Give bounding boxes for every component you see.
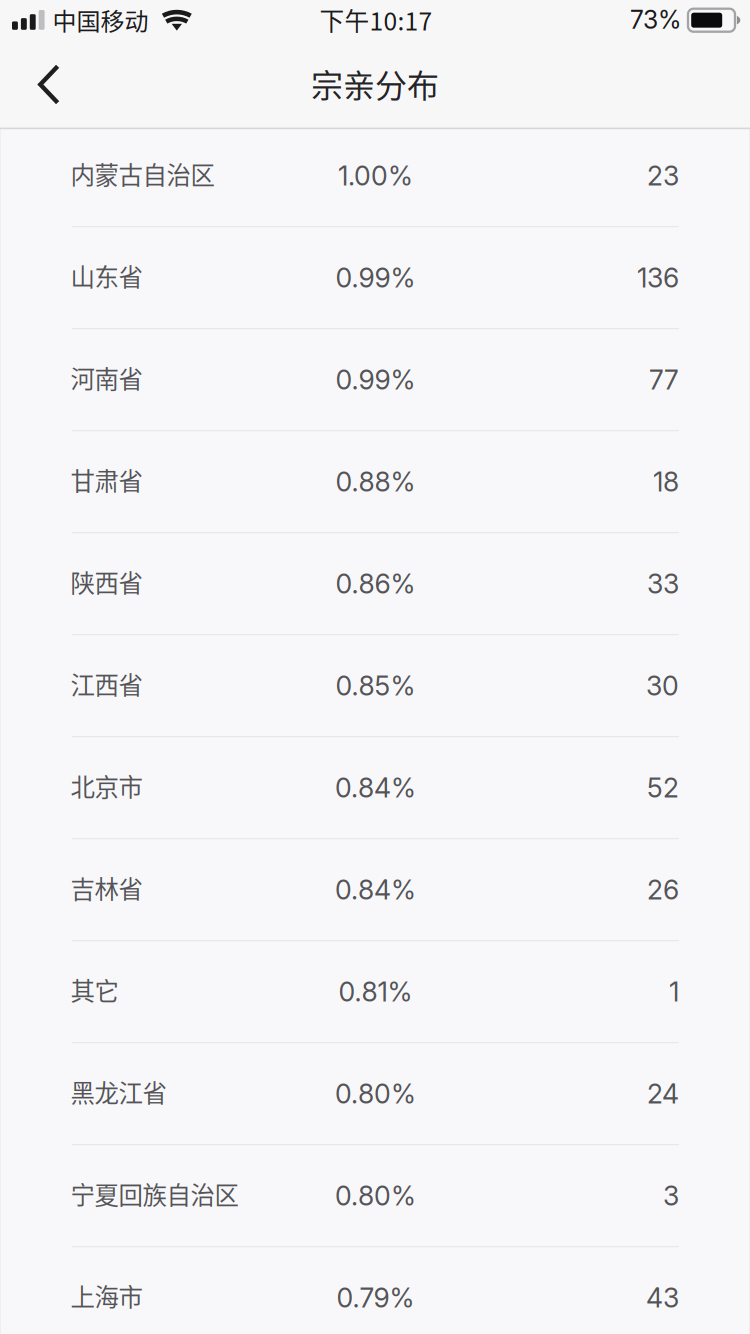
staticText: 77 — [649, 364, 679, 396]
button[interactable]: 黑龙江省 — [72, 1043, 679, 1145]
staticText: 0.84% — [335, 874, 416, 906]
staticText: 3 — [663, 1180, 679, 1212]
staticText: 0.99% — [335, 364, 415, 396]
staticText: 0.99% — [335, 262, 415, 294]
staticText: 江西省 — [70, 666, 142, 702]
staticText: 18 — [653, 466, 679, 498]
staticText: 1 — [669, 976, 679, 1008]
button[interactable]: 甘肃省 — [72, 431, 679, 533]
staticText: 0.84% — [335, 772, 416, 804]
staticText: 0.88% — [335, 466, 415, 498]
staticText: 0.79% — [336, 1282, 414, 1314]
button[interactable]: 河南省 — [72, 329, 679, 431]
staticText: 24 — [647, 1078, 679, 1110]
staticText: 43 — [646, 1282, 679, 1314]
staticText: 52 — [647, 772, 679, 804]
button[interactable]: 其它 — [72, 941, 679, 1043]
button[interactable]: 陕西省 — [72, 533, 679, 635]
staticText: 中国移动 — [52, 2, 148, 37]
staticText: 0.85% — [335, 670, 415, 702]
staticText: 宗亲分布 — [311, 60, 439, 107]
staticText: 26 — [647, 874, 679, 906]
staticText: 河南省 — [70, 360, 142, 396]
staticText: 0.80% — [335, 1078, 416, 1110]
staticText: 0.81% — [338, 976, 412, 1008]
staticText: 30 — [646, 670, 679, 702]
staticText: 北京市 — [70, 768, 142, 804]
button[interactable]: 内蒙古自治区 — [72, 125, 679, 227]
staticText: 1.00% — [338, 160, 413, 192]
button[interactable]: 宁夏回族自治区 — [72, 1145, 679, 1247]
staticText: 73% — [630, 5, 681, 35]
staticText: 黑龙江省 — [70, 1074, 166, 1110]
staticText: 陕西省 — [70, 564, 142, 600]
staticText: 下午10:17 — [319, 2, 432, 38]
staticText: 宁夏回族自治区 — [70, 1176, 238, 1212]
staticText: 其它 — [70, 972, 118, 1008]
button[interactable]: 山东省 — [72, 227, 679, 329]
staticText: 136 — [637, 262, 679, 294]
button[interactable]: 北京市 — [72, 737, 679, 839]
staticText: 甘肃省 — [70, 462, 142, 498]
button[interactable]: 江西省 — [72, 635, 679, 737]
staticText: 33 — [647, 568, 679, 600]
staticText: 内蒙古自治区 — [70, 156, 214, 192]
button[interactable]: 吉林省 — [72, 839, 679, 941]
staticText: 0.80% — [335, 1180, 416, 1212]
staticText: 23 — [647, 160, 679, 192]
button[interactable]: 上海市 — [72, 1247, 679, 1334]
button[interactable]: 返回 — [14, 48, 84, 120]
staticText: 吉林省 — [70, 870, 142, 906]
staticText: 上海市 — [70, 1278, 142, 1314]
staticText: 山东省 — [70, 258, 142, 294]
staticText: 0.86% — [335, 568, 415, 600]
